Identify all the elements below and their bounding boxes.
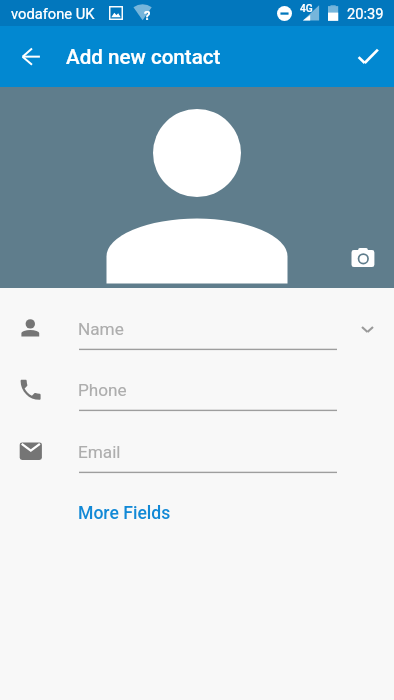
button[interactable]: Change photo	[346, 244, 380, 272]
button[interactable]: More Fields	[65, 496, 184, 530]
staticText: vodafone UK	[11, 5, 95, 22]
staticText: More Fields	[78, 503, 171, 524]
staticText: Name	[78, 319, 124, 339]
staticText: Phone	[78, 380, 127, 400]
button[interactable]: Save contact	[345, 33, 392, 80]
staticText: 4G	[300, 3, 313, 15]
button[interactable]: Navigate up	[7, 33, 54, 80]
staticText: 20:39	[347, 5, 384, 22]
button[interactable]: Email	[0, 420, 394, 481]
staticText: ?	[144, 8, 151, 23]
staticText: Email	[78, 442, 121, 462]
staticText: Add new contact	[66, 45, 221, 69]
button[interactable]: Name	[0, 297, 394, 358]
button[interactable]: Expand name fields	[352, 314, 382, 344]
button[interactable]: Phone	[0, 358, 394, 419]
